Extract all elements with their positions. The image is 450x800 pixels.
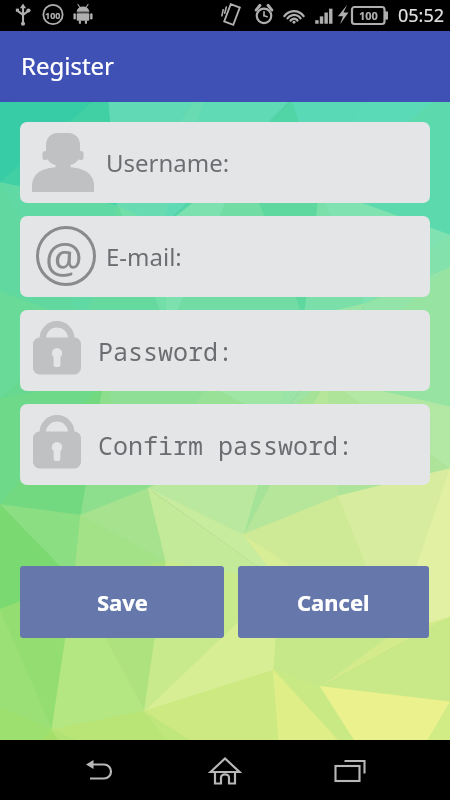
staticText: Save: [97, 587, 148, 617]
button[interactable]: Recent apps: [290, 740, 410, 800]
button[interactable]: Home: [165, 740, 285, 800]
staticText: Register: [21, 49, 115, 82]
button[interactable]: @: [20, 216, 430, 297]
button[interactable]: Confirm password:: [20, 404, 430, 485]
staticText: Username:: [106, 146, 230, 179]
staticText: 05:52: [398, 3, 445, 28]
staticText: Cancel: [297, 587, 370, 617]
button[interactable]: Username:: [20, 122, 430, 203]
staticText: 100: [359, 8, 378, 23]
staticText: 100: [45, 9, 61, 21]
staticText: @: [45, 228, 83, 285]
staticText: Confirm password:: [98, 428, 354, 462]
button[interactable]: Back: [40, 740, 160, 800]
button[interactable]: Cancel: [238, 566, 429, 638]
button[interactable]: Save: [20, 566, 224, 638]
button[interactable]: Password:: [20, 310, 430, 391]
staticText: E-mail:: [106, 240, 182, 273]
staticText: Password:: [98, 334, 234, 368]
